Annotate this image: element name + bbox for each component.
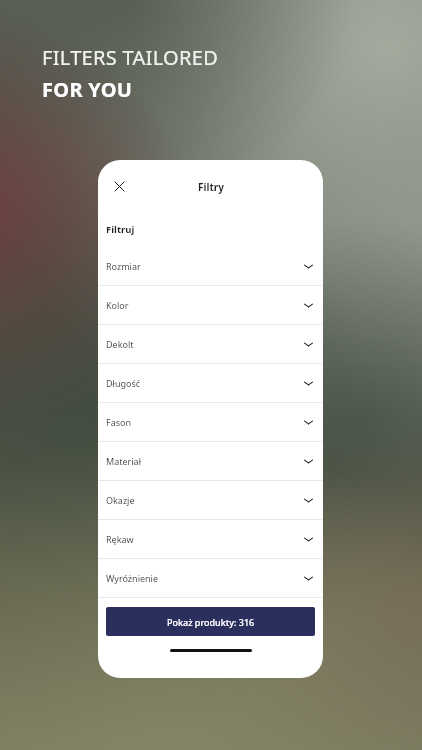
staticText: Materiał: [106, 455, 141, 467]
button[interactable]: Okazje: [98, 481, 323, 520]
staticText: Kolor: [106, 299, 129, 311]
button[interactable]: Fason: [98, 403, 323, 442]
button[interactable]: Wyróżnienie: [98, 559, 323, 598]
button[interactable]: Rękaw: [98, 520, 323, 559]
button[interactable]: Dekolt: [98, 325, 323, 364]
staticText: FILTERS TAILORED: [42, 44, 219, 71]
staticText: Pokaż produkty: 316: [167, 616, 255, 628]
button[interactable]: Materiał: [98, 442, 323, 481]
staticText: FOR YOU: [42, 76, 133, 103]
staticText: Filtruj: [106, 223, 135, 236]
button[interactable]: Pokaż produkty: 316: [106, 607, 315, 636]
button[interactable]: Kolor: [98, 286, 323, 325]
staticText: Filtry: [198, 180, 224, 194]
staticText: Fason: [106, 416, 132, 428]
button[interactable]: Długość: [98, 364, 323, 403]
staticText: Dekolt: [106, 338, 134, 350]
staticText: Wyróżnienie: [106, 572, 159, 584]
button[interactable]: Close: [104, 171, 134, 201]
staticText: Okazje: [106, 494, 135, 506]
staticText: Rękaw: [106, 533, 134, 545]
staticText: Rozmiar: [106, 260, 141, 272]
staticText: Długość: [106, 377, 141, 389]
button[interactable]: Rozmiar: [98, 247, 323, 286]
